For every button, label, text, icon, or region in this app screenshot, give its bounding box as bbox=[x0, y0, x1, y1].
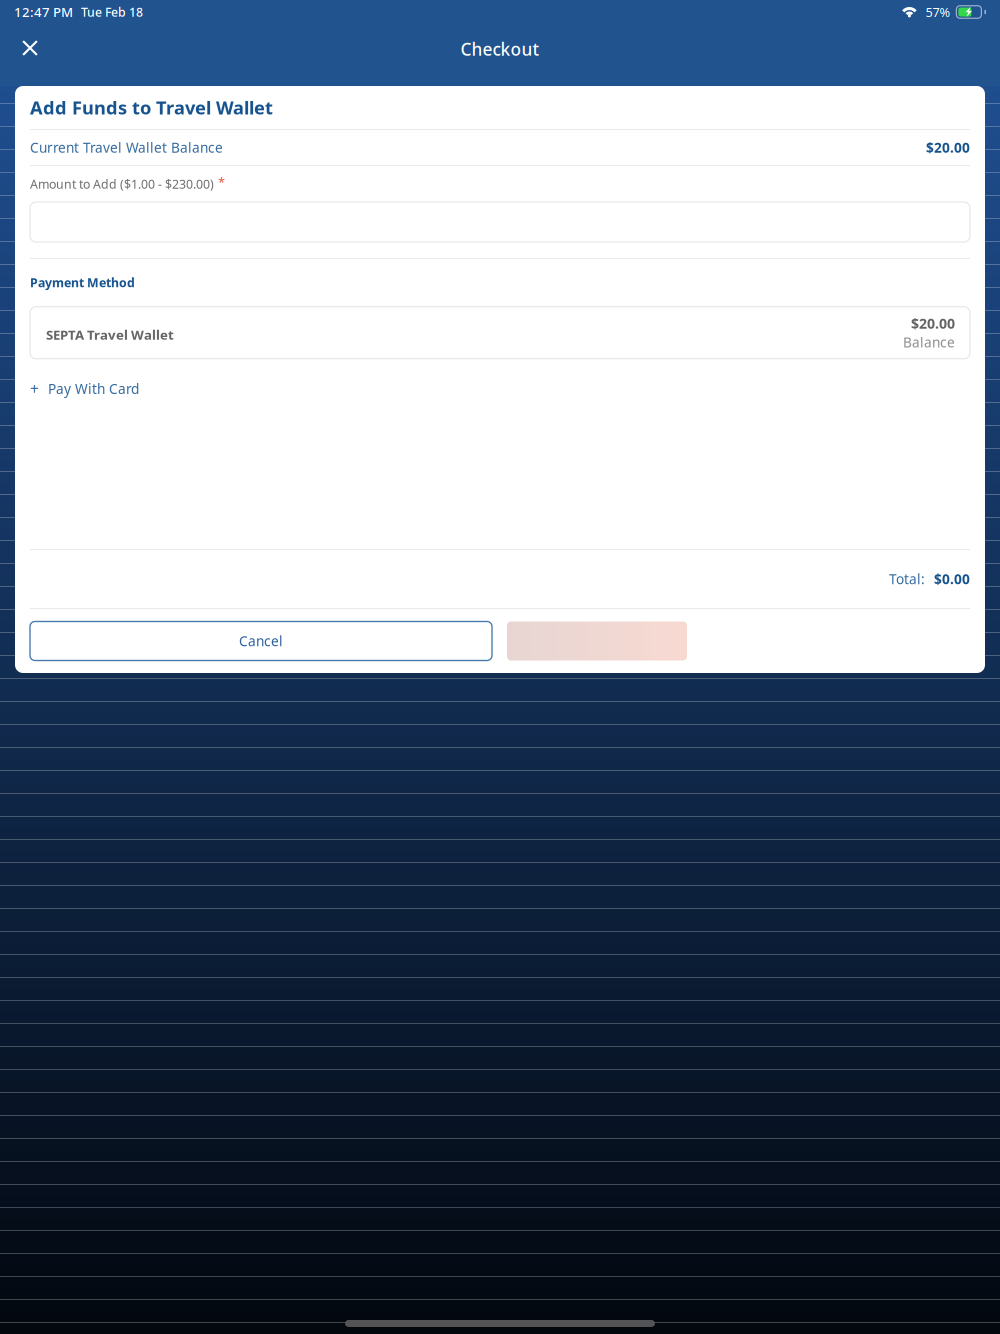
button[interactable]: SEPTA Travel Wallet bbox=[30, 307, 970, 359]
staticText: 12:47 PM bbox=[14, 3, 73, 21]
staticText: Current Travel Wallet Balance bbox=[30, 138, 223, 157]
staticText: Balance bbox=[903, 333, 955, 352]
staticText: Payment Method bbox=[30, 274, 135, 291]
staticText: SEPTA Travel Wallet bbox=[46, 326, 174, 344]
button[interactable]: + bbox=[30, 375, 970, 403]
staticText: * bbox=[218, 173, 225, 191]
button[interactable]: Pay bbox=[507, 621, 687, 660]
staticText: Total: bbox=[889, 570, 925, 588]
staticText: Cancel bbox=[239, 632, 283, 650]
button[interactable]: Cancel bbox=[30, 621, 492, 660]
staticText: $20.00 bbox=[911, 314, 955, 333]
staticText: Checkout bbox=[460, 37, 539, 61]
staticText: $20.00 bbox=[926, 138, 970, 157]
staticText: $0.00 bbox=[934, 570, 970, 588]
button[interactable]: Close bbox=[0, 24, 58, 76]
staticText: 57% bbox=[925, 3, 950, 21]
staticText: + bbox=[30, 378, 39, 399]
staticText: Amount to Add ($1.00 - $230.00) bbox=[30, 176, 214, 192]
staticText: Pay With Card bbox=[48, 379, 139, 398]
staticText: Tue Feb 18 bbox=[81, 4, 143, 20]
staticText: Add Funds to Travel Wallet bbox=[30, 95, 273, 120]
